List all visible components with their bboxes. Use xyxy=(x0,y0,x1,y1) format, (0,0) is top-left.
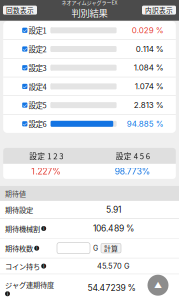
staticText: i xyxy=(7,291,8,296)
staticText: ネオアイムジャグラーEX xyxy=(61,0,117,6)
staticText: ✓ xyxy=(22,64,27,71)
button[interactable]: ✓ xyxy=(3,77,176,95)
staticText: ✓ xyxy=(22,120,27,127)
button[interactable]: ✓ xyxy=(3,21,176,39)
staticText: 0.029 % xyxy=(132,25,164,35)
staticText: ▲ xyxy=(154,280,162,290)
button[interactable]: Scroll to top xyxy=(147,275,168,296)
staticText: 設定4 xyxy=(29,81,47,92)
button[interactable]: ✓ xyxy=(3,96,176,114)
staticText: 判別結果 xyxy=(71,6,107,19)
staticText: 期待機械割 xyxy=(5,223,40,234)
staticText: 5.91 xyxy=(106,204,121,215)
button[interactable]: 計算 xyxy=(101,243,121,253)
staticText: 期待設定 xyxy=(5,204,33,215)
staticText: 設定6 xyxy=(29,118,47,129)
staticText: 45.570 G xyxy=(97,262,130,271)
button[interactable]: ✓ xyxy=(3,40,176,58)
staticText: 期待値 xyxy=(5,188,26,198)
staticText: 設定 4 5 6 xyxy=(116,150,150,161)
staticText: i xyxy=(36,245,37,251)
staticText: 2.813 % xyxy=(134,100,164,110)
staticText: ✓ xyxy=(22,102,27,108)
staticText: 回数表示 xyxy=(6,5,34,15)
staticText: 106.489 % xyxy=(93,223,134,234)
button[interactable]: 回数表示 xyxy=(3,6,37,15)
button[interactable]: ✓ xyxy=(3,59,176,77)
staticText: i xyxy=(43,263,44,269)
staticText: コイン持ち xyxy=(5,261,40,271)
staticText: ✓ xyxy=(22,83,27,90)
staticText: ジャグ連期待度 xyxy=(5,279,54,290)
staticText: 設定5 xyxy=(29,100,47,110)
staticText: 期待枚数 xyxy=(5,243,33,253)
staticText: 1.084 % xyxy=(134,63,164,73)
staticText: G xyxy=(93,244,98,252)
staticText: 1.227% xyxy=(31,166,61,177)
staticText: i xyxy=(43,226,44,231)
staticText: 1.074 % xyxy=(135,82,164,91)
staticText: 設定 1 2 3 xyxy=(29,150,63,161)
button[interactable]: ✓ xyxy=(3,115,176,133)
staticText: 設定2 xyxy=(29,44,47,54)
staticText: 0.114 % xyxy=(136,44,164,54)
staticText: 設定1 xyxy=(29,25,47,36)
staticText: 94.885 % xyxy=(127,119,164,129)
button[interactable]: 内訳表示 xyxy=(142,6,176,15)
staticText: 内訳表示 xyxy=(145,5,173,15)
staticText: 計算 xyxy=(104,243,118,253)
staticText: 98.773% xyxy=(115,166,151,177)
staticText: 設定3 xyxy=(29,62,47,73)
staticText: 54.47239 % xyxy=(87,283,135,293)
staticText: ✓ xyxy=(22,46,27,52)
staticText: ✓ xyxy=(22,27,27,34)
